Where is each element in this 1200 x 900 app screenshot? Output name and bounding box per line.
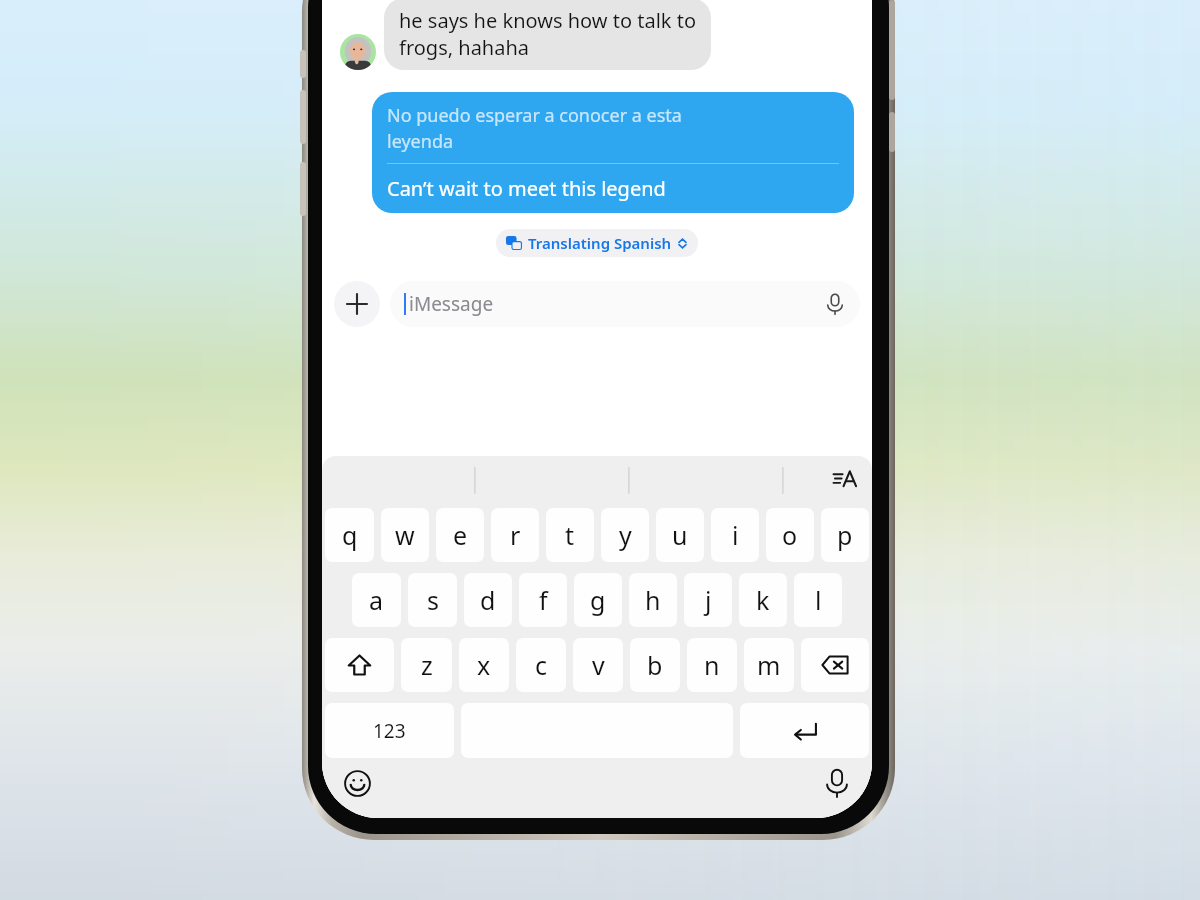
staticText: e xyxy=(453,518,468,552)
button[interactable]: p xyxy=(821,508,869,562)
button[interactable]: q xyxy=(325,508,374,562)
button[interactable]: d xyxy=(464,573,512,627)
button[interactable]: e xyxy=(436,508,484,562)
staticText: f xyxy=(539,583,548,617)
button[interactable]: s xyxy=(408,573,457,627)
staticText: w xyxy=(395,518,415,552)
button[interactable]: a xyxy=(352,573,401,627)
staticText: g xyxy=(590,583,606,617)
staticText: iMessage xyxy=(409,291,494,317)
staticText: u xyxy=(672,518,688,552)
button[interactable]: y xyxy=(601,508,649,562)
button[interactable]: n xyxy=(687,638,737,692)
staticText: p xyxy=(837,518,853,552)
staticText: q xyxy=(342,518,358,552)
staticText: z xyxy=(421,648,433,682)
button[interactable]: r xyxy=(491,508,539,562)
button[interactable]: l xyxy=(794,573,842,627)
button[interactable]: Add attachment xyxy=(334,281,380,327)
button[interactable]: Text formatting xyxy=(830,464,860,494)
staticText: o xyxy=(782,518,798,552)
staticText: m xyxy=(757,648,781,682)
staticText: r xyxy=(510,518,521,552)
staticText: a xyxy=(369,583,384,617)
button[interactable]: t xyxy=(546,508,594,562)
button[interactable]: x xyxy=(459,638,509,692)
button[interactable]: Return xyxy=(740,703,869,758)
staticText: c xyxy=(535,648,548,682)
staticText: n xyxy=(704,648,720,682)
button[interactable]: c xyxy=(516,638,566,692)
staticText: l xyxy=(815,583,822,617)
button[interactable]: he says he knows how to talk to frogs, h… xyxy=(384,0,711,70)
staticText: s xyxy=(427,583,439,617)
button[interactable]: u xyxy=(656,508,704,562)
button[interactable]: o xyxy=(766,508,814,562)
staticText: t xyxy=(565,518,575,552)
button[interactable]: Shift xyxy=(325,638,394,692)
staticText: v xyxy=(592,648,605,682)
button[interactable]: Contact avatar xyxy=(340,34,376,70)
staticText: i xyxy=(732,518,739,552)
button[interactable]: Dictate xyxy=(824,293,846,315)
staticText: y xyxy=(619,518,632,552)
staticText: d xyxy=(480,583,496,617)
button[interactable]: Backspace xyxy=(801,638,869,692)
button[interactable]: z xyxy=(401,638,452,692)
button[interactable]: iMessage xyxy=(390,281,860,327)
button[interactable]: f xyxy=(519,573,567,627)
staticText: he says he knows how to talk to frogs, h… xyxy=(399,7,696,61)
button[interactable]: Emoji xyxy=(342,768,372,798)
button[interactable]: i xyxy=(711,508,759,562)
staticText: Can’t wait to meet this legend xyxy=(387,175,666,202)
button[interactable]: No puedo esperar a conocer a esta leyend… xyxy=(372,92,854,213)
staticText: x xyxy=(477,648,491,682)
button[interactable]: Dictation xyxy=(822,768,852,798)
staticText: k xyxy=(756,583,770,617)
button[interactable]: v xyxy=(573,638,623,692)
button[interactable]: k xyxy=(739,573,787,627)
button[interactable]: h xyxy=(629,573,677,627)
button[interactable]: m xyxy=(744,638,794,692)
button[interactable]: g xyxy=(574,573,622,627)
staticText: 123 xyxy=(373,718,406,744)
button[interactable]: w xyxy=(381,508,429,562)
button[interactable]: Translating Spanish xyxy=(496,229,698,257)
button[interactable]: 123 xyxy=(325,703,454,758)
staticText: j xyxy=(705,583,712,617)
button[interactable]: b xyxy=(630,638,680,692)
staticText: Translating Spanish xyxy=(528,233,672,253)
button[interactable]: j xyxy=(684,573,732,627)
staticText: b xyxy=(647,648,663,682)
staticText: No puedo esperar a conocer a esta leyend… xyxy=(387,103,682,153)
staticText: h xyxy=(645,583,661,617)
